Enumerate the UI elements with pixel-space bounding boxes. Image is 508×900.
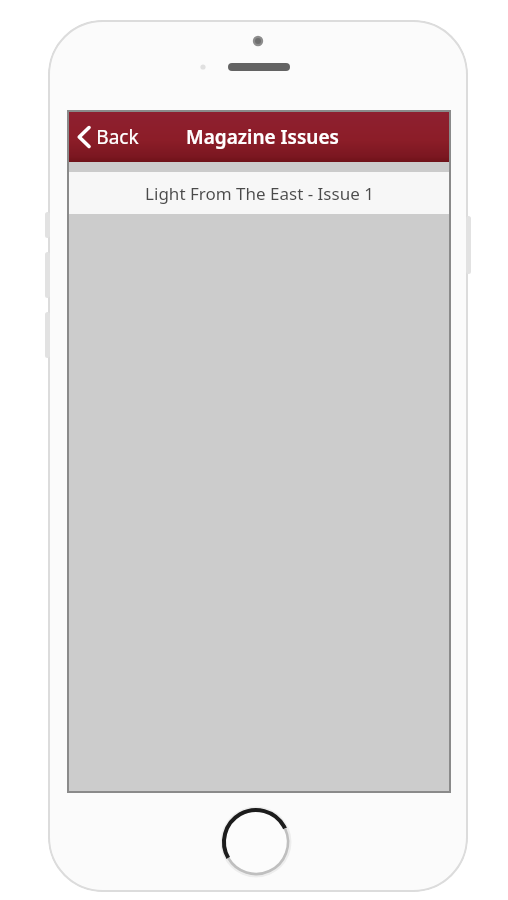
staticText: Light From The East - Issue 1 bbox=[145, 182, 374, 205]
staticText: Magazine Issues bbox=[186, 124, 339, 150]
staticText: Back bbox=[96, 124, 139, 150]
button[interactable]: Home bbox=[220, 806, 292, 878]
button[interactable]: Back bbox=[77, 112, 139, 162]
button[interactable]: Light From The East - Issue 1 bbox=[69, 172, 449, 214]
